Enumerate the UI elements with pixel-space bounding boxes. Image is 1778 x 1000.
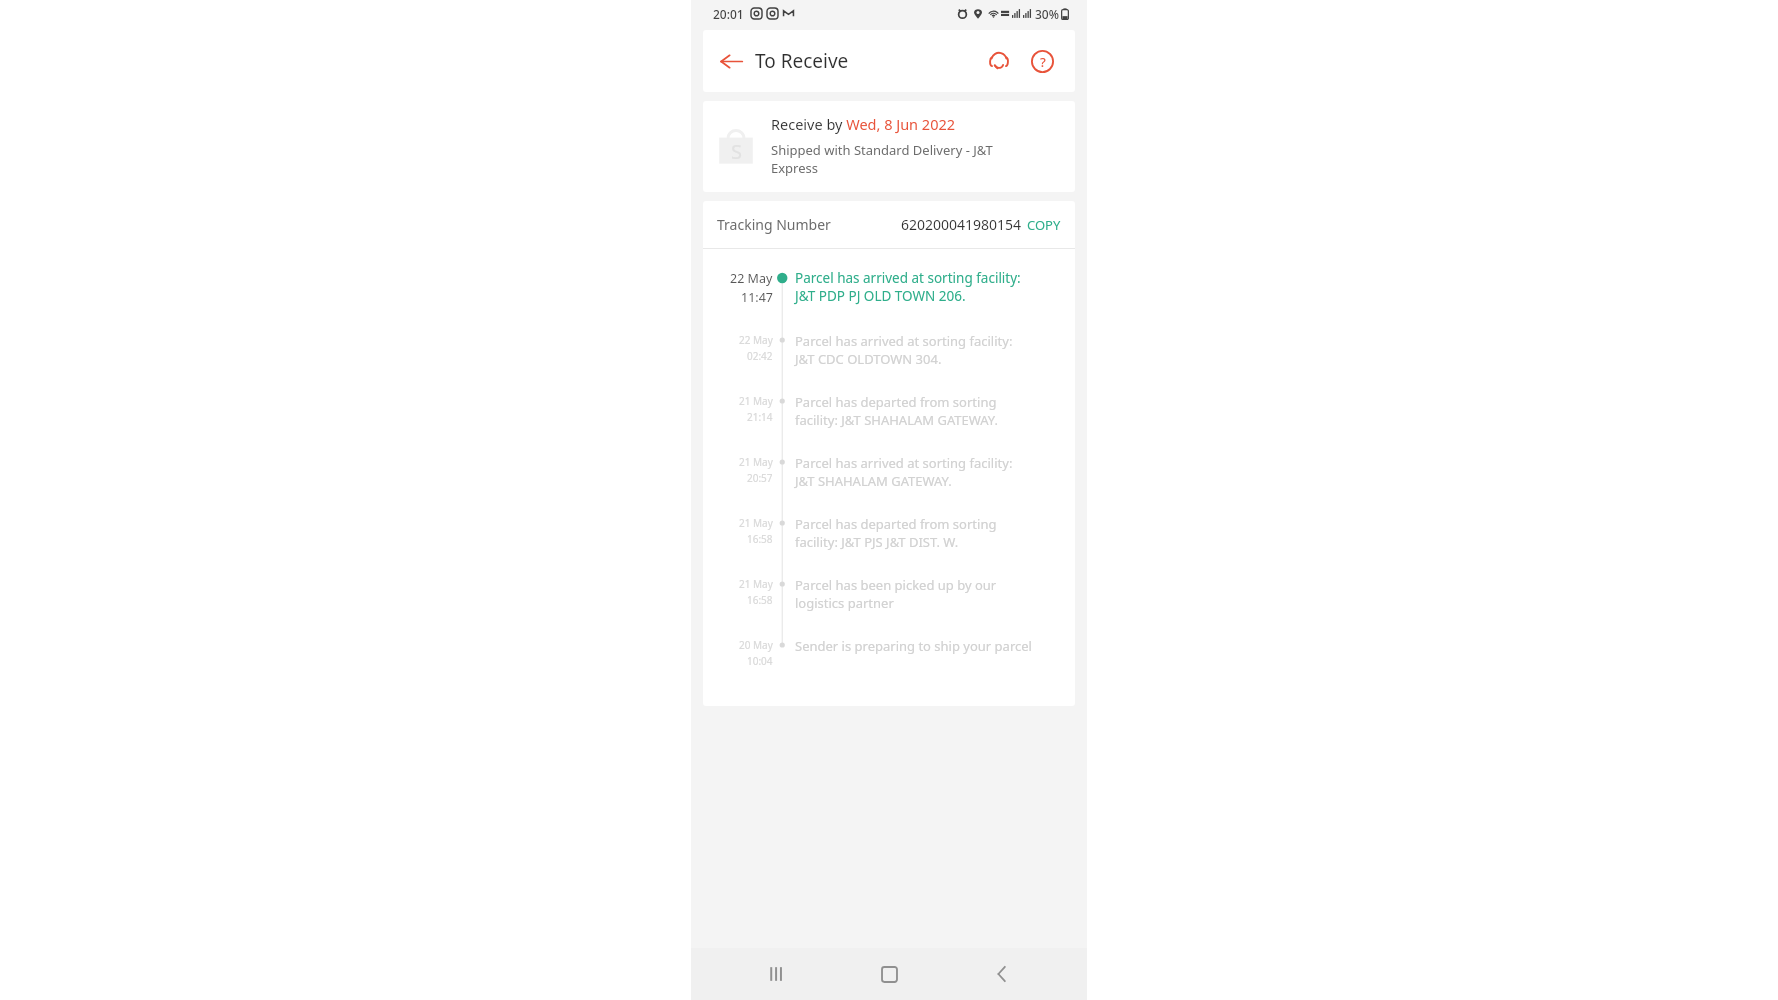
staticText: 21 May <box>739 455 773 469</box>
staticText: 22 May <box>739 333 773 347</box>
staticText: Parcel has arrived at sorting facility: … <box>795 269 1021 305</box>
staticText: 20 May <box>739 638 773 652</box>
button[interactable]: 22 May <box>703 320 1075 381</box>
staticText: Parcel has departed from sorting facilit… <box>795 393 998 429</box>
staticText: 21 May <box>739 394 773 408</box>
staticText: To Receive <box>755 48 849 74</box>
staticText: 20:01 <box>713 6 744 22</box>
button[interactable]: Help <box>1025 44 1059 78</box>
button[interactable]: 21 May <box>703 503 1075 564</box>
staticText: 11:47 <box>741 289 773 306</box>
button[interactable]: Back <box>715 45 747 77</box>
button[interactable]: Back <box>974 948 1030 1000</box>
staticText: Sender is preparing to ship your parcel <box>795 637 1032 655</box>
staticText: Parcel has been picked up by our logisti… <box>795 576 997 612</box>
staticText: 02:42 <box>747 349 773 363</box>
staticText: 21 May <box>739 516 773 530</box>
button[interactable]: 21 May <box>703 442 1075 503</box>
staticText: ? <box>1040 53 1046 71</box>
staticText: 21 May <box>739 577 773 591</box>
staticText: 22 May <box>730 270 773 287</box>
staticText: 21:14 <box>747 410 773 424</box>
staticText: Parcel has departed from sorting facilit… <box>795 515 997 551</box>
button[interactable]: 22 May <box>703 259 1075 320</box>
staticText: 20:57 <box>747 471 773 485</box>
button[interactable]: Tracking Number <box>703 201 1075 248</box>
staticText: COPY <box>1027 216 1061 234</box>
button[interactable]: Customer support <box>982 44 1016 78</box>
button[interactable]: Recent apps <box>748 948 804 1000</box>
staticText: 620200041980154 <box>901 215 1022 234</box>
staticText: 16:58 <box>747 532 773 546</box>
staticText: Shipped with Standard Delivery - J&T Exp… <box>771 141 993 177</box>
staticText: Tracking Number <box>717 215 831 234</box>
staticText: Receive by Wed, 8 Jun 2022 <box>771 114 956 134</box>
button[interactable]: 21 May <box>703 564 1075 625</box>
button[interactable]: 21 May <box>703 381 1075 442</box>
button[interactable]: COPY <box>1027 216 1061 234</box>
staticText: 10:04 <box>747 654 773 668</box>
staticText: 30% <box>1035 6 1059 22</box>
button[interactable]: Home <box>861 948 917 1000</box>
staticText: S <box>731 138 742 165</box>
staticText: Parcel has arrived at sorting facility: … <box>795 332 1013 368</box>
button[interactable]: 20 May <box>703 625 1075 686</box>
button[interactable]: S <box>703 101 1075 192</box>
staticText: 16:58 <box>747 593 773 607</box>
staticText: Parcel has arrived at sorting facility: … <box>795 454 1013 490</box>
